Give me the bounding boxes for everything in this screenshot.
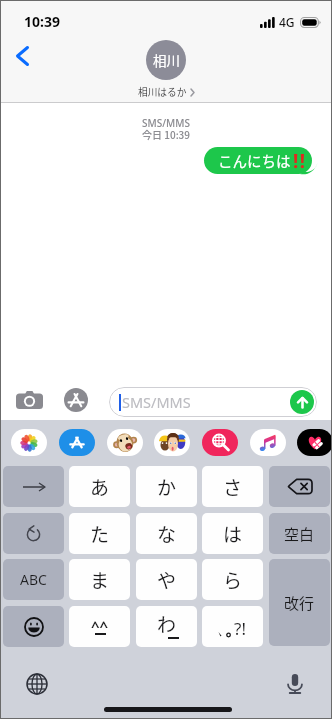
button[interactable] — [59, 429, 95, 456]
button[interactable]: こんにちは — [204, 147, 318, 174]
staticText: ^^ — [91, 616, 109, 636]
staticText: た — [90, 520, 110, 548]
button[interactable]: た — [69, 513, 130, 554]
staticText: 空白 — [284, 523, 315, 545]
button[interactable]: ^^ — [69, 606, 130, 647]
button[interactable] — [269, 466, 330, 507]
button[interactable] — [154, 429, 190, 456]
staticText: な — [157, 520, 177, 548]
button[interactable]: Change keyboard — [25, 672, 49, 696]
staticText: ま — [90, 566, 110, 594]
staticText: SMS/MMS — [122, 392, 191, 412]
button[interactable] — [297, 429, 332, 456]
button[interactable] — [250, 429, 286, 456]
staticText: ?! — [234, 617, 246, 640]
staticText: 10:39 — [24, 12, 60, 31]
staticText: わ — [157, 610, 177, 638]
button[interactable]: 空白 — [269, 513, 330, 554]
button[interactable]: ?! — [202, 606, 263, 647]
button[interactable]: SMS/MMS — [109, 387, 317, 417]
button[interactable] — [107, 429, 143, 456]
button[interactable]: さ — [202, 466, 263, 507]
button[interactable]: ABC — [3, 559, 64, 600]
button[interactable]: わ — [136, 606, 197, 647]
button[interactable]: Dictation — [283, 672, 307, 696]
button[interactable]: 相川 — [0, 40, 332, 99]
button[interactable]: な — [136, 513, 197, 554]
staticText: 改行 — [284, 592, 315, 614]
button[interactable] — [3, 513, 64, 554]
button[interactable]: ら — [202, 559, 263, 600]
staticText: は — [223, 520, 243, 548]
button[interactable] — [3, 466, 64, 507]
button[interactable]: は — [202, 513, 263, 554]
button[interactable] — [11, 429, 47, 456]
button[interactable]: Back — [6, 40, 38, 72]
staticText: や — [157, 566, 177, 594]
staticText: さ — [223, 473, 243, 501]
button[interactable]: か — [136, 466, 197, 507]
staticText: あ — [90, 473, 110, 501]
button[interactable]: ま — [69, 559, 130, 600]
staticText: ABC — [20, 570, 47, 589]
button[interactable]: App Store — [61, 388, 91, 412]
button[interactable]: あ — [69, 466, 130, 507]
staticText: SMS/MMS — [0, 116, 332, 130]
staticText: 4G — [279, 14, 295, 30]
button[interactable]: Camera — [12, 389, 46, 411]
button[interactable]: 改行 — [269, 559, 330, 646]
button[interactable] — [3, 606, 64, 647]
staticText: 相川 — [153, 50, 180, 70]
button[interactable]: や — [136, 559, 197, 600]
staticText: 今日 10:39 — [0, 127, 332, 141]
staticText: か — [157, 473, 177, 501]
staticText: こんにちは — [218, 150, 291, 171]
staticText: ら — [223, 566, 243, 594]
button[interactable] — [202, 429, 238, 456]
staticText: 相川はるか — [138, 85, 187, 99]
button[interactable]: Send — [290, 390, 314, 414]
